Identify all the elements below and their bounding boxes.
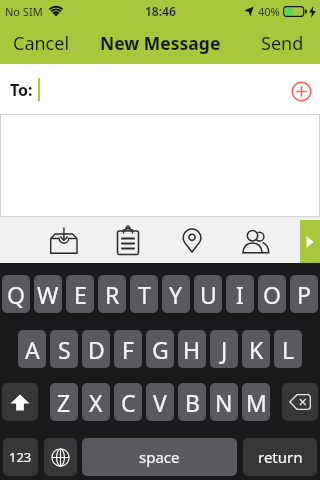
- button[interactable]: D: [82, 330, 110, 368]
- staticText: X: [89, 387, 103, 418]
- staticText: L: [282, 334, 295, 365]
- staticText: K: [249, 334, 264, 365]
- button[interactable]: B: [178, 383, 206, 421]
- staticText: T: [138, 279, 151, 310]
- button[interactable]: Q: [2, 275, 30, 313]
- staticText: 18:46: [145, 3, 176, 19]
- button[interactable]: V: [146, 383, 174, 421]
- button[interactable]: space: [82, 438, 237, 476]
- staticText: A: [25, 334, 40, 365]
- button[interactable]: return: [243, 438, 317, 476]
- button[interactable]: [224, 217, 288, 263]
- button[interactable]: [160, 217, 224, 263]
- staticText: 40%: [258, 4, 280, 19]
- button[interactable]: S: [50, 330, 78, 368]
- button[interactable]: Y: [162, 275, 190, 313]
- button[interactable]: W: [34, 275, 62, 313]
- staticText: G: [152, 334, 169, 365]
- button[interactable]: Z: [50, 383, 78, 421]
- staticText: space: [139, 447, 180, 467]
- button[interactable]: H: [178, 330, 206, 368]
- staticText: B: [185, 387, 200, 418]
- button[interactable]: K: [242, 330, 270, 368]
- staticText: 123: [9, 448, 32, 466]
- staticText: F: [122, 334, 134, 365]
- button[interactable]: Send: [261, 31, 304, 56]
- staticText: U: [200, 279, 217, 310]
- staticText: D: [88, 334, 105, 365]
- button[interactable]: [291, 81, 312, 102]
- button[interactable]: L: [274, 330, 302, 368]
- button[interactable]: I: [226, 275, 254, 313]
- staticText: No SIM: [5, 4, 43, 19]
- button[interactable]: [282, 383, 318, 421]
- staticText: Z: [57, 387, 71, 418]
- staticText: Q: [7, 279, 25, 310]
- button[interactable]: N: [210, 383, 238, 421]
- staticText: Send: [261, 31, 304, 56]
- button[interactable]: M: [242, 383, 270, 421]
- button[interactable]: U: [194, 275, 222, 313]
- button[interactable]: [32, 217, 96, 263]
- button[interactable]: T: [130, 275, 158, 313]
- button[interactable]: X: [82, 383, 110, 421]
- staticText: O: [263, 279, 281, 310]
- staticText: Y: [169, 279, 183, 310]
- staticText: W: [37, 279, 59, 310]
- button[interactable]: Cancel: [13, 31, 70, 56]
- staticText: V: [153, 387, 167, 418]
- button[interactable]: [44, 438, 77, 476]
- staticText: E: [74, 279, 87, 310]
- staticText: I: [236, 279, 244, 310]
- button[interactable]: C: [114, 383, 142, 421]
- staticText: J: [221, 334, 228, 365]
- staticText: P: [297, 279, 311, 310]
- button[interactable]: R: [98, 275, 126, 313]
- button[interactable]: [2, 383, 38, 421]
- button[interactable]: O: [258, 275, 286, 313]
- staticText: N: [215, 387, 233, 418]
- button[interactable]: J: [210, 330, 238, 368]
- button[interactable]: F: [114, 330, 142, 368]
- button[interactable]: P: [290, 275, 318, 313]
- staticText: return: [258, 447, 303, 467]
- button[interactable]: G: [146, 330, 174, 368]
- staticText: M: [246, 387, 267, 418]
- staticText: C: [121, 387, 136, 418]
- staticText: To:: [10, 79, 33, 101]
- staticText: S: [58, 334, 71, 365]
- button[interactable]: 123: [3, 438, 38, 476]
- button[interactable]: [96, 217, 160, 263]
- button[interactable]: E: [66, 275, 94, 313]
- staticText: R: [105, 279, 120, 310]
- staticText: H: [183, 334, 201, 365]
- button[interactable]: [300, 220, 320, 263]
- staticText: New Message: [100, 31, 221, 55]
- staticText: Cancel: [13, 31, 70, 56]
- button[interactable]: A: [18, 330, 46, 368]
